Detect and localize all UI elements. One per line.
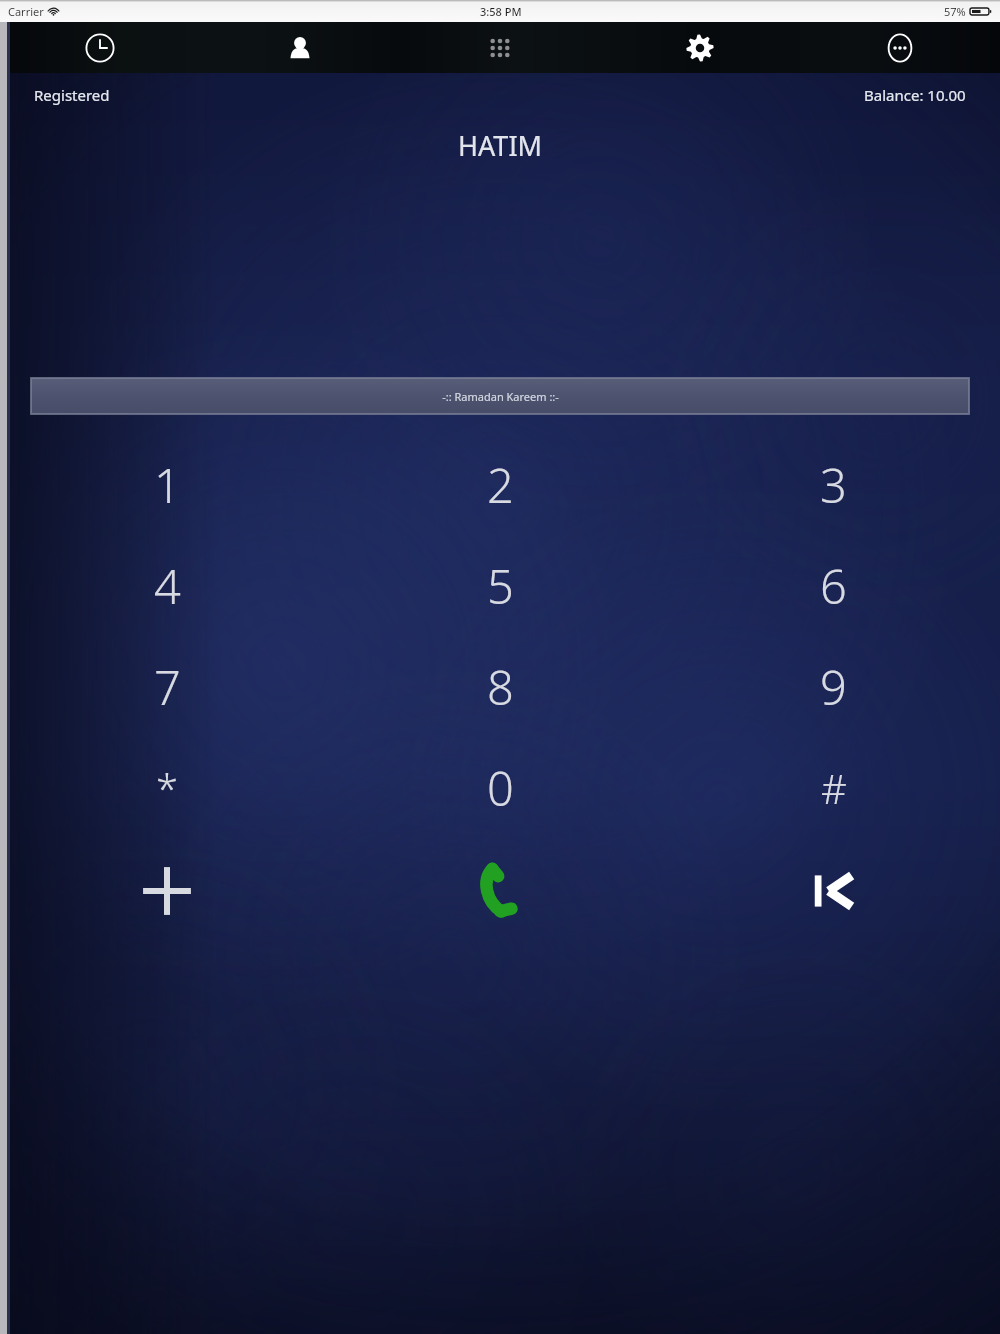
button[interactable]: 2 bbox=[334, 434, 667, 535]
button[interactable]: Plus bbox=[0, 838, 334, 944]
staticText: # bbox=[821, 761, 847, 815]
staticText: 4 bbox=[154, 554, 181, 618]
staticText: 5 bbox=[487, 554, 514, 618]
staticText: Registered bbox=[34, 85, 110, 105]
button[interactable]: 8 bbox=[334, 636, 667, 737]
button[interactable]: Settings bbox=[600, 22, 800, 73]
staticText: * bbox=[156, 761, 179, 815]
button[interactable]: 0 bbox=[334, 737, 667, 838]
button[interactable]: 1 bbox=[0, 434, 334, 535]
button[interactable]: 9 bbox=[667, 636, 1000, 737]
button[interactable]: Keypad bbox=[400, 22, 600, 73]
button[interactable]: Recents bbox=[0, 22, 200, 73]
staticText: Carrier bbox=[8, 4, 44, 19]
button[interactable]: Backspace bbox=[667, 838, 1000, 944]
button[interactable]: 5 bbox=[334, 535, 667, 636]
button[interactable]: * bbox=[0, 737, 334, 838]
staticText: 3 bbox=[820, 453, 847, 517]
staticText: 6 bbox=[820, 554, 847, 618]
button[interactable]: More bbox=[800, 22, 1000, 73]
staticText: HATIM bbox=[458, 127, 543, 164]
staticText: 2 bbox=[487, 453, 514, 517]
staticText: 8 bbox=[487, 655, 514, 719]
staticText: 3:58 PM bbox=[480, 4, 522, 19]
button[interactable]: 6 bbox=[667, 535, 1000, 636]
staticText: 0 bbox=[487, 756, 514, 820]
staticText: 9 bbox=[820, 655, 847, 719]
button[interactable]: -:: Ramadan Kareem ::- bbox=[31, 378, 969, 414]
button[interactable]: 3 bbox=[667, 434, 1000, 535]
button[interactable]: 4 bbox=[0, 535, 334, 636]
staticText: 1 bbox=[154, 453, 181, 517]
staticText: Balance: 10.00 bbox=[864, 85, 966, 105]
staticText: 7 bbox=[154, 655, 181, 719]
button[interactable]: Call bbox=[334, 838, 667, 944]
button[interactable]: Contacts bbox=[200, 22, 400, 73]
staticText: -:: Ramadan Kareem ::- bbox=[442, 389, 559, 404]
button[interactable]: 7 bbox=[0, 636, 334, 737]
staticText: 57% bbox=[944, 4, 966, 19]
button[interactable]: # bbox=[667, 737, 1000, 838]
